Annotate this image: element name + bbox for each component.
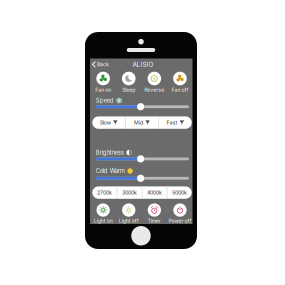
staticText: 5000k [172, 189, 187, 196]
staticText: Power off [168, 218, 191, 224]
staticText: Timer [148, 218, 161, 224]
button[interactable]: 4000k [142, 186, 167, 199]
staticText: Light off [119, 218, 139, 224]
staticText: Reverse [144, 87, 164, 93]
staticText: Fan on [95, 87, 111, 93]
staticText: Sleep [122, 87, 135, 93]
button[interactable]: Sleep [116, 72, 141, 93]
button[interactable]: Timer [142, 203, 167, 224]
staticText: Fast [166, 119, 177, 126]
staticText: 2700k [97, 189, 112, 196]
button[interactable]: Mid [126, 116, 158, 129]
staticText: ALISIO [132, 60, 153, 68]
button[interactable]: Fan on [90, 72, 116, 93]
button[interactable]: Power off [167, 203, 193, 224]
staticText: Cold Warm [96, 167, 125, 174]
button[interactable]: 3000k [117, 186, 142, 199]
staticText: Light on [94, 218, 113, 224]
staticText: 3000k [122, 189, 137, 196]
staticText: 4000k [147, 189, 162, 196]
staticText: Brightness [96, 149, 124, 156]
staticText: Fan off [171, 87, 188, 93]
staticText: Back [97, 61, 109, 68]
staticText: Mid [134, 119, 143, 126]
button[interactable]: Light off [116, 203, 141, 224]
button[interactable]: Back [90, 59, 110, 70]
button[interactable]: 5000k [167, 186, 192, 199]
button[interactable]: 2700k [92, 186, 117, 199]
button[interactable]: Slow [92, 116, 125, 129]
button[interactable]: Reverse [142, 72, 167, 93]
button[interactable]: Fast [159, 116, 192, 129]
staticText: Speed [96, 97, 114, 104]
button[interactable]: Light on [90, 203, 116, 224]
button[interactable]: Fan off [167, 72, 193, 93]
staticText: Slow [100, 119, 111, 126]
